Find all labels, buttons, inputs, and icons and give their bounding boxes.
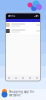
staticText: Shopping app for everyone bbox=[9, 90, 34, 97]
staticText: Cart bbox=[33, 14, 38, 18]
staticText: Menu bbox=[7, 14, 15, 18]
